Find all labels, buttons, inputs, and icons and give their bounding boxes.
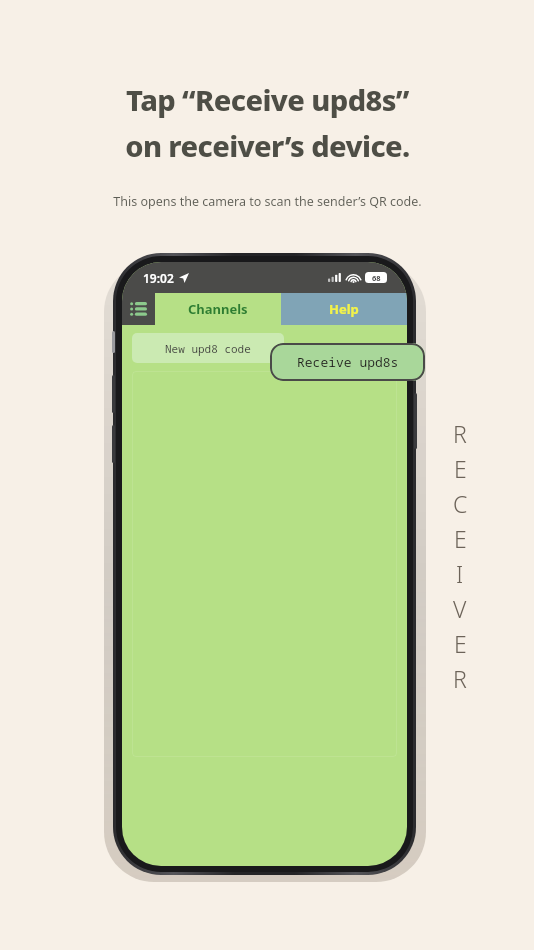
- staticText: 68: [372, 273, 381, 283]
- staticText: 19:02: [143, 270, 174, 286]
- staticText: Receive upd8s: [297, 353, 399, 371]
- staticText: Help: [329, 300, 359, 318]
- staticText: E: [454, 628, 467, 659]
- staticText: R: [453, 663, 467, 694]
- button[interactable]: Help: [281, 293, 407, 325]
- staticText: E: [454, 453, 467, 484]
- staticText: This opens the camera to scan the sender…: [113, 193, 422, 210]
- staticText: Tap “Receive upd8s”: [126, 80, 409, 119]
- button[interactable]: Menu: [122, 293, 155, 325]
- staticText: E: [454, 523, 467, 554]
- button[interactable]: Channels: [155, 293, 281, 325]
- staticText: C: [453, 488, 468, 519]
- staticText: R: [453, 418, 467, 449]
- button[interactable]: New upd8 code: [132, 333, 284, 363]
- staticText: I: [456, 558, 464, 589]
- button[interactable]: Receive upd8s: [270, 343, 425, 381]
- staticText: Channels: [188, 300, 248, 318]
- staticText: V: [453, 593, 467, 624]
- staticText: New upd8 code: [165, 341, 251, 356]
- staticText: on receiver’s device.: [125, 126, 410, 165]
